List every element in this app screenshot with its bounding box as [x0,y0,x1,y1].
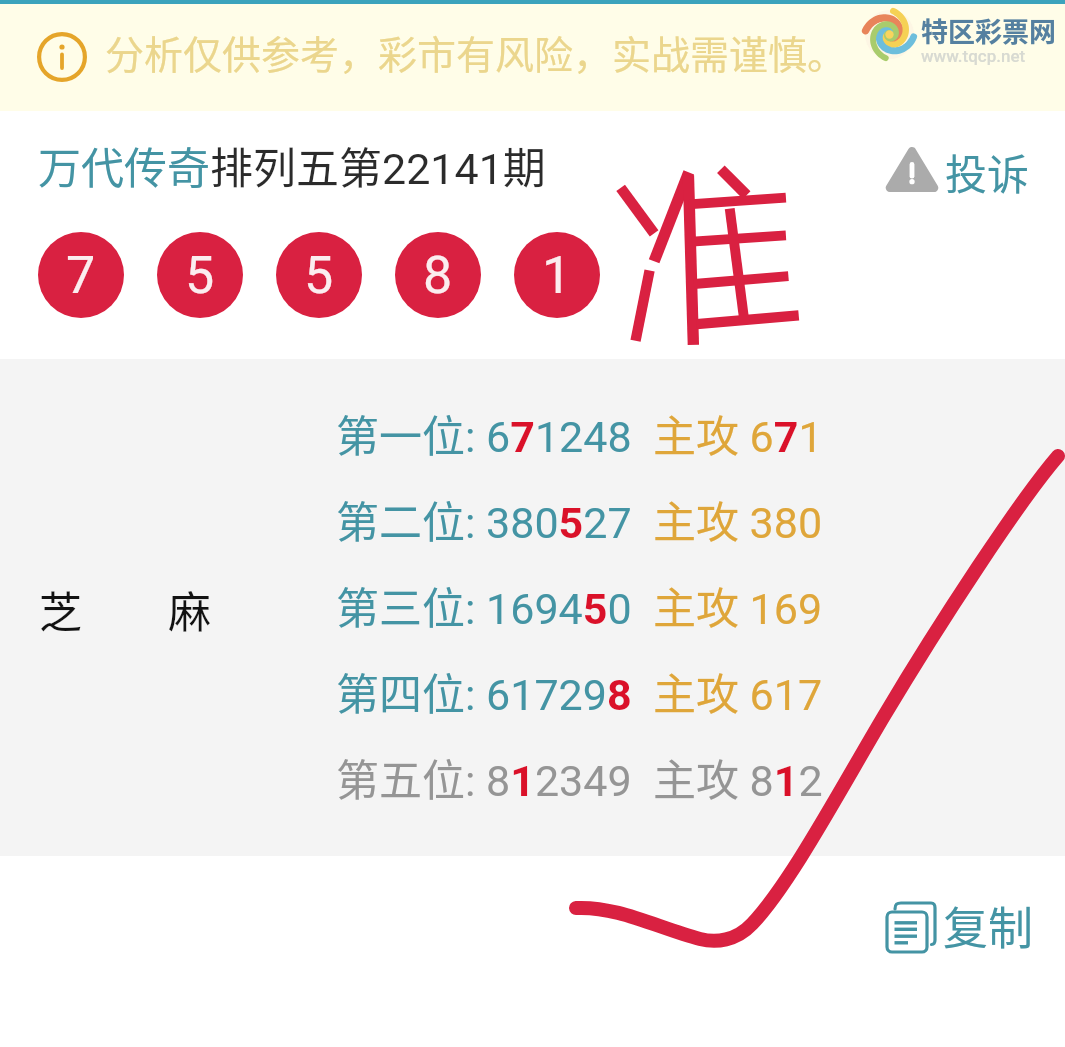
staticText: 第二位: 380527 主攻 380 [336,488,823,550]
staticText: 分析仅供参考，彩市有风险，实战需谨慎。 [105,24,847,80]
button[interactable]: 7 [38,232,124,318]
staticText: 麻 [168,578,211,640]
other: 复制 [882,898,944,960]
staticText: 投诉 [945,141,1030,202]
button[interactable]: 5 [276,232,362,318]
button[interactable]: 特区彩票网 [864,9,1056,68]
button[interactable]: 复制 [882,902,1035,967]
staticText: 7 [66,245,96,306]
staticText: 第三位: 169450 主攻 169 [336,574,823,636]
button[interactable]: 8 [395,232,481,318]
staticText: 特区彩票网 [921,11,1056,50]
staticText: www.tqcp.net [921,46,1026,66]
staticText: 5 [304,245,334,306]
button[interactable]: 投诉 [885,143,1030,204]
staticText: 芝 [39,578,82,640]
other: 投诉 [885,146,939,192]
staticText: 5 [185,245,215,306]
staticText: 1 [542,245,572,306]
staticText: 第一位: 671248 主攻 671 [336,402,823,464]
button[interactable]: 5 [157,232,243,318]
staticText: 第五位: 812349 主攻 812 [336,746,823,808]
staticText: 8 [423,245,453,306]
button[interactable]: 万代传奇排列五第22141期 [38,134,546,196]
staticText: 复制 [943,893,1034,958]
staticText: 第四位: 617298 主攻 617 [336,660,823,722]
button[interactable]: 提示 [37,32,87,82]
button[interactable]: 1 [514,232,600,318]
